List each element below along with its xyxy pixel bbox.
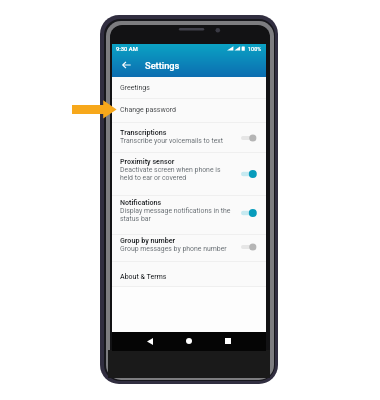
button[interactable]: Change password [112, 98, 266, 122]
button[interactable]: Home [181, 335, 197, 347]
staticText: Display message notifications in the sta… [120, 207, 231, 223]
staticText: 100% [248, 46, 262, 52]
staticText: Group by number [120, 236, 176, 244]
staticText: Group messages by phone number [120, 245, 227, 253]
button[interactable]: Switch on [241, 168, 259, 180]
button[interactable]: Switch off [241, 132, 259, 144]
button[interactable]: Notifications [112, 195, 266, 234]
button[interactable]: Recent apps [220, 335, 236, 347]
staticText: Proximity sensor [120, 157, 175, 165]
staticText: Transcriptions [120, 128, 167, 136]
staticText: 9:30 AM [116, 46, 138, 53]
staticText: Change password [120, 106, 176, 114]
button[interactable]: Navigate up [117, 56, 135, 74]
button[interactable]: Switch off [241, 241, 259, 253]
staticText: Settings [145, 60, 180, 71]
staticText: Greetings [120, 84, 150, 92]
staticText: Deactivate screen when phone is held to … [120, 166, 221, 182]
staticText: Notifications [120, 198, 162, 206]
button[interactable]: Back [142, 335, 158, 347]
button[interactable]: Group by number [112, 234, 266, 261]
button[interactable]: Switch on [241, 207, 259, 219]
button[interactable]: Greetings [112, 77, 266, 98]
button[interactable]: About & Terms [112, 261, 266, 286]
staticText: About & Terms [120, 273, 167, 281]
button[interactable]: Proximity sensor [112, 152, 266, 196]
staticText: Transcribe your voicemails to text [120, 137, 223, 145]
button[interactable]: Transcriptions [112, 122, 266, 152]
